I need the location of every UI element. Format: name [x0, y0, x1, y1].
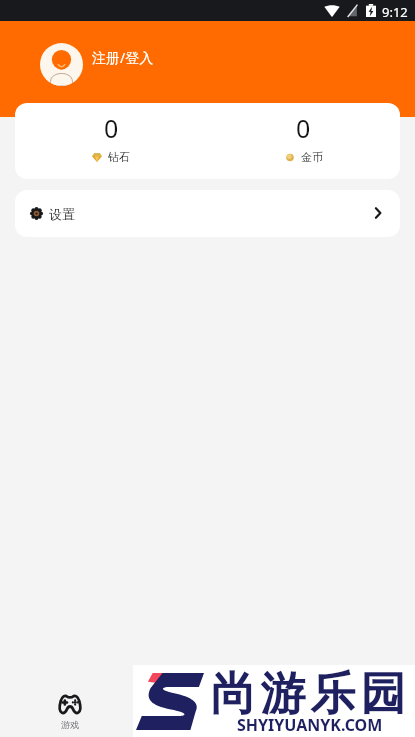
other: Open settings: [371, 206, 385, 220]
staticText: 注册/登入: [92, 48, 154, 67]
button[interactable]: 注册/登入: [15, 21, 385, 107]
staticText: 0: [296, 111, 311, 145]
other: Settings: [30, 207, 43, 220]
button[interactable]: Games: [20, 686, 119, 737]
staticText: 设置: [49, 206, 75, 222]
other: Games: [58, 694, 82, 714]
staticText: 9:12: [382, 3, 408, 21]
staticText: 金币: [301, 150, 323, 164]
staticText: SHYIYUANYK.COM: [237, 714, 383, 736]
staticText: 钻石: [108, 150, 130, 164]
staticText: 游戏: [61, 719, 79, 730]
staticText: 0: [104, 111, 119, 145]
button[interactable]: 0: [207, 103, 400, 179]
button[interactable]: 0: [15, 103, 207, 179]
staticText: 尚游乐园: [208, 666, 408, 723]
button[interactable]: Settings: [15, 190, 400, 237]
